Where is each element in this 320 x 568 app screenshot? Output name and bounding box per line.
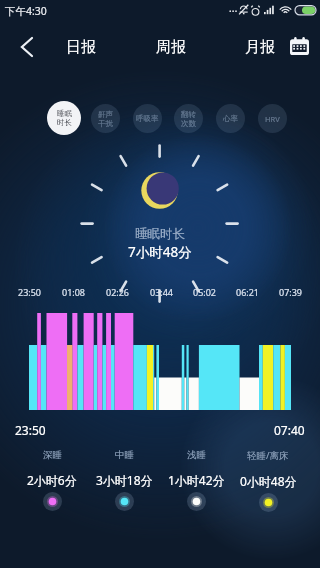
button[interactable]: 月报: [237, 32, 283, 62]
staticText: 日报: [66, 38, 96, 57]
button[interactable]: HRV: [258, 104, 287, 133]
button[interactable]: 呼吸率: [133, 104, 162, 133]
staticText: 月报: [245, 38, 275, 57]
staticText: 01:08: [62, 286, 86, 298]
staticText: 呼吸率: [136, 114, 159, 123]
button[interactable]: 睡眠: [47, 101, 81, 135]
staticText: 7小时48分: [128, 243, 192, 261]
button[interactable]: 中睡: [88, 449, 160, 511]
staticText: 中睡: [115, 449, 134, 461]
staticText: 心率: [223, 114, 238, 123]
staticText: 23:50: [18, 286, 42, 298]
staticText: HRV: [265, 114, 280, 124]
button[interactable]: 鼾声: [91, 104, 120, 133]
staticText: 05:02: [193, 286, 217, 298]
staticText: 睡眠: [57, 109, 72, 118]
staticText: 3小时18分: [96, 472, 153, 488]
staticText: 翻转: [181, 110, 196, 119]
staticText: 06:21: [236, 286, 260, 298]
staticText: 深睡: [43, 449, 62, 461]
button[interactable]: 周报: [148, 32, 194, 62]
button[interactable]: 轻睡/离床: [232, 449, 304, 512]
staticText: 睡眠时长: [135, 226, 185, 242]
staticText: 02:26: [106, 286, 130, 298]
staticText: 时长: [57, 118, 72, 127]
staticText: 03:44: [150, 286, 174, 298]
staticText: 07:39: [279, 286, 303, 298]
button[interactable]: 深睡: [16, 449, 88, 511]
button[interactable]: Back: [9, 30, 43, 64]
staticText: 干扰: [98, 119, 113, 128]
staticText: 07:40: [274, 422, 305, 438]
staticText: 2小时6分: [27, 472, 77, 488]
staticText: 下午4:30: [5, 4, 47, 18]
staticText: 1小时42分: [168, 472, 225, 488]
staticText: 次数: [181, 119, 196, 128]
button[interactable]: 心率: [216, 104, 245, 133]
staticText: 0小时48分: [240, 473, 297, 489]
button[interactable]: 浅睡: [160, 449, 232, 511]
staticText: 鼾声: [98, 110, 113, 119]
staticText: 浅睡: [187, 449, 206, 461]
button[interactable]: 日报: [58, 32, 104, 62]
button[interactable]: Calendar: [285, 32, 313, 60]
button[interactable]: 翻转: [174, 104, 203, 133]
staticText: 周报: [156, 38, 186, 57]
staticText: 轻睡/离床: [247, 449, 289, 462]
staticText: 23:50: [15, 422, 46, 438]
